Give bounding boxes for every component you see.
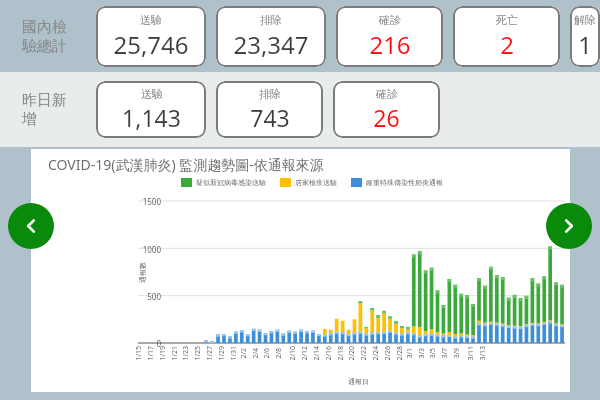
staticText: 2/26	[382, 345, 392, 360]
staticText: 2/10	[287, 345, 297, 360]
staticText: 3/1	[404, 347, 414, 358]
staticText: 3/5	[427, 347, 437, 358]
button[interactable]: 確診	[333, 81, 440, 138]
staticText: 國內檢	[22, 18, 67, 37]
button[interactable]: 解除	[570, 6, 600, 67]
staticText: 送驗	[141, 87, 163, 101]
staticText: 2/24	[370, 345, 380, 360]
staticText: 增	[22, 110, 37, 129]
button[interactable]: 排除	[216, 81, 323, 138]
staticText: 2/6	[261, 347, 271, 358]
button[interactable]: Next	[546, 203, 592, 249]
staticText: 3/3	[416, 347, 426, 358]
staticText: 1/21	[169, 345, 179, 360]
staticText: 2/28	[394, 345, 404, 360]
staticText: 排除	[259, 87, 281, 101]
button[interactable]: 排除	[216, 6, 326, 67]
staticText: 嚴重特殊傳染性肺炎通報	[366, 178, 443, 187]
staticText: 3/9	[451, 347, 461, 358]
staticText: 216	[369, 28, 411, 61]
staticText: 0	[127, 338, 161, 349]
staticText: COVID-19(武漢肺炎) 監測趨勢圖-依通報來源	[48, 155, 324, 174]
staticText: 昨日新	[22, 91, 67, 110]
staticText: 26	[373, 102, 400, 133]
staticText: 743	[250, 102, 290, 133]
staticText: 排除	[260, 13, 282, 27]
staticText: 1/19	[157, 345, 167, 360]
staticText: 1/31	[228, 345, 238, 360]
staticText: 1,143	[122, 102, 181, 133]
staticText: 通報數	[138, 262, 147, 283]
staticText: 1/25	[192, 345, 202, 360]
staticText: 1/27	[204, 345, 214, 360]
staticText: 1/17	[145, 345, 155, 360]
staticText: 解除	[574, 13, 596, 27]
staticText: 居家檢疫送驗	[295, 178, 337, 187]
staticText: 1000	[127, 244, 161, 255]
staticText: 2/20	[346, 345, 356, 360]
staticText: 2/12	[299, 345, 309, 360]
staticText: 25,746	[113, 28, 189, 61]
button[interactable]: 送驗	[96, 6, 206, 67]
button[interactable]: 確診	[336, 6, 443, 67]
staticText: 2/16	[323, 345, 333, 360]
staticText: 1/29	[216, 345, 226, 360]
staticText: 通報日	[348, 377, 369, 386]
staticText: 2/4	[250, 347, 260, 358]
staticText: 驗總計	[22, 37, 67, 56]
staticText: 2/2	[238, 347, 248, 358]
staticText: 1500	[127, 196, 161, 207]
staticText: 疑似新冠病毒感染送驗	[196, 178, 266, 187]
staticText: 2/22	[358, 345, 368, 360]
staticText: 3/13	[477, 345, 487, 360]
staticText: 1/15	[133, 345, 143, 360]
button[interactable]: 送驗	[96, 81, 206, 138]
staticText: 確診	[379, 13, 401, 27]
button[interactable]: Previous	[8, 203, 54, 249]
staticText: 23,347	[233, 28, 309, 61]
staticText: 確診	[376, 87, 398, 101]
staticText: 2/8	[273, 347, 283, 358]
staticText: 死亡	[496, 13, 518, 27]
button[interactable]: 死亡	[453, 6, 560, 67]
staticText: 1/23	[180, 345, 190, 360]
staticText: 500	[127, 291, 161, 302]
staticText: 1	[578, 28, 592, 61]
staticText: 3/11	[465, 345, 475, 360]
staticText: 3/7	[439, 347, 449, 358]
staticText: 2	[500, 28, 514, 61]
staticText: 送驗	[140, 13, 162, 27]
staticText: 2/18	[335, 345, 345, 360]
staticText: 2/14	[311, 345, 321, 360]
